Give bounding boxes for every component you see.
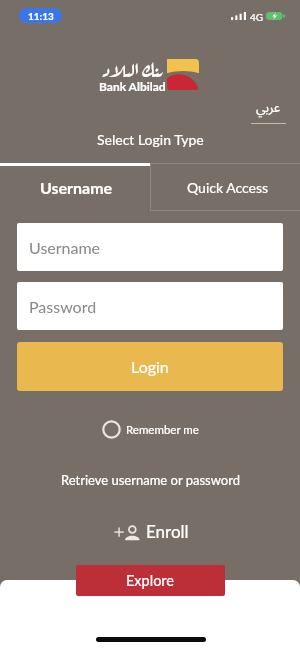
staticText: Password [29,297,97,316]
button[interactable]: Password [17,282,283,330]
staticText: بنك البلاد [102,53,163,77]
staticText: Quick Access [187,179,269,196]
staticText: عربي [256,94,281,121]
staticText: Select Login Type [97,131,204,148]
staticText: Username [40,178,113,197]
button[interactable]: Explore [76,565,225,596]
staticText: 11:13 [28,10,54,22]
staticText: Explore [126,572,175,589]
button[interactable]: Quick Access [150,163,300,211]
other: Enroll [111,520,138,542]
staticText: Remember me [126,423,199,437]
button[interactable]: Remember me [99,417,202,442]
staticText: Login [131,357,169,376]
button[interactable]: Enroll [108,517,192,545]
staticText: Username [29,238,101,257]
staticText: 4G [250,11,264,23]
staticText: Retrieve username or password [61,472,240,488]
staticText: Bank Albilad [99,79,166,93]
staticText: Enroll [146,521,189,541]
button[interactable]: Login [17,342,283,391]
button[interactable]: Username [0,163,150,211]
button[interactable]: Arabic [251,94,286,124]
button[interactable]: Retrieve username or password [58,469,243,491]
button[interactable]: Username [17,223,283,271]
